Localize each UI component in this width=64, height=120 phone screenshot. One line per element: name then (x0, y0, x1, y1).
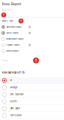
staticText: Incident Report (6, 44, 20, 46)
staticText: Manager (10, 86, 18, 89)
staticText: Maintenance Report (6, 38, 24, 40)
button[interactable]: Operations Report (0, 24, 64, 30)
staticText: New Report (2, 2, 21, 6)
staticText: Security (10, 100, 17, 103)
button[interactable]: All (0, 77, 64, 84)
staticText: Operations Report (6, 26, 22, 28)
staticText: Priority (2, 60, 8, 61)
staticText: Report Title (2, 9, 11, 11)
button[interactable]: Control Room (0, 112, 64, 119)
staticText: Control Room (10, 114, 22, 117)
button[interactable]: General Report (0, 48, 64, 54)
staticText: All (10, 79, 11, 82)
button[interactable]: Security (0, 98, 64, 105)
staticText: General Report (6, 50, 19, 52)
button[interactable]: Maintenance Report (0, 36, 64, 42)
button[interactable]: Client Liaison (0, 105, 64, 112)
button[interactable]: Shift Supervisor (0, 91, 64, 98)
button[interactable]: Manager (0, 84, 64, 91)
staticText: Client Liaison (10, 107, 20, 110)
staticText: Shift Supervisor (10, 93, 24, 96)
button[interactable]: Incident Report (0, 42, 64, 48)
staticText: Safety Report (6, 32, 19, 34)
staticText: Report Type (2, 20, 13, 22)
staticText: Release Report To (2, 71, 25, 74)
button[interactable]: Safety Report (0, 30, 64, 36)
